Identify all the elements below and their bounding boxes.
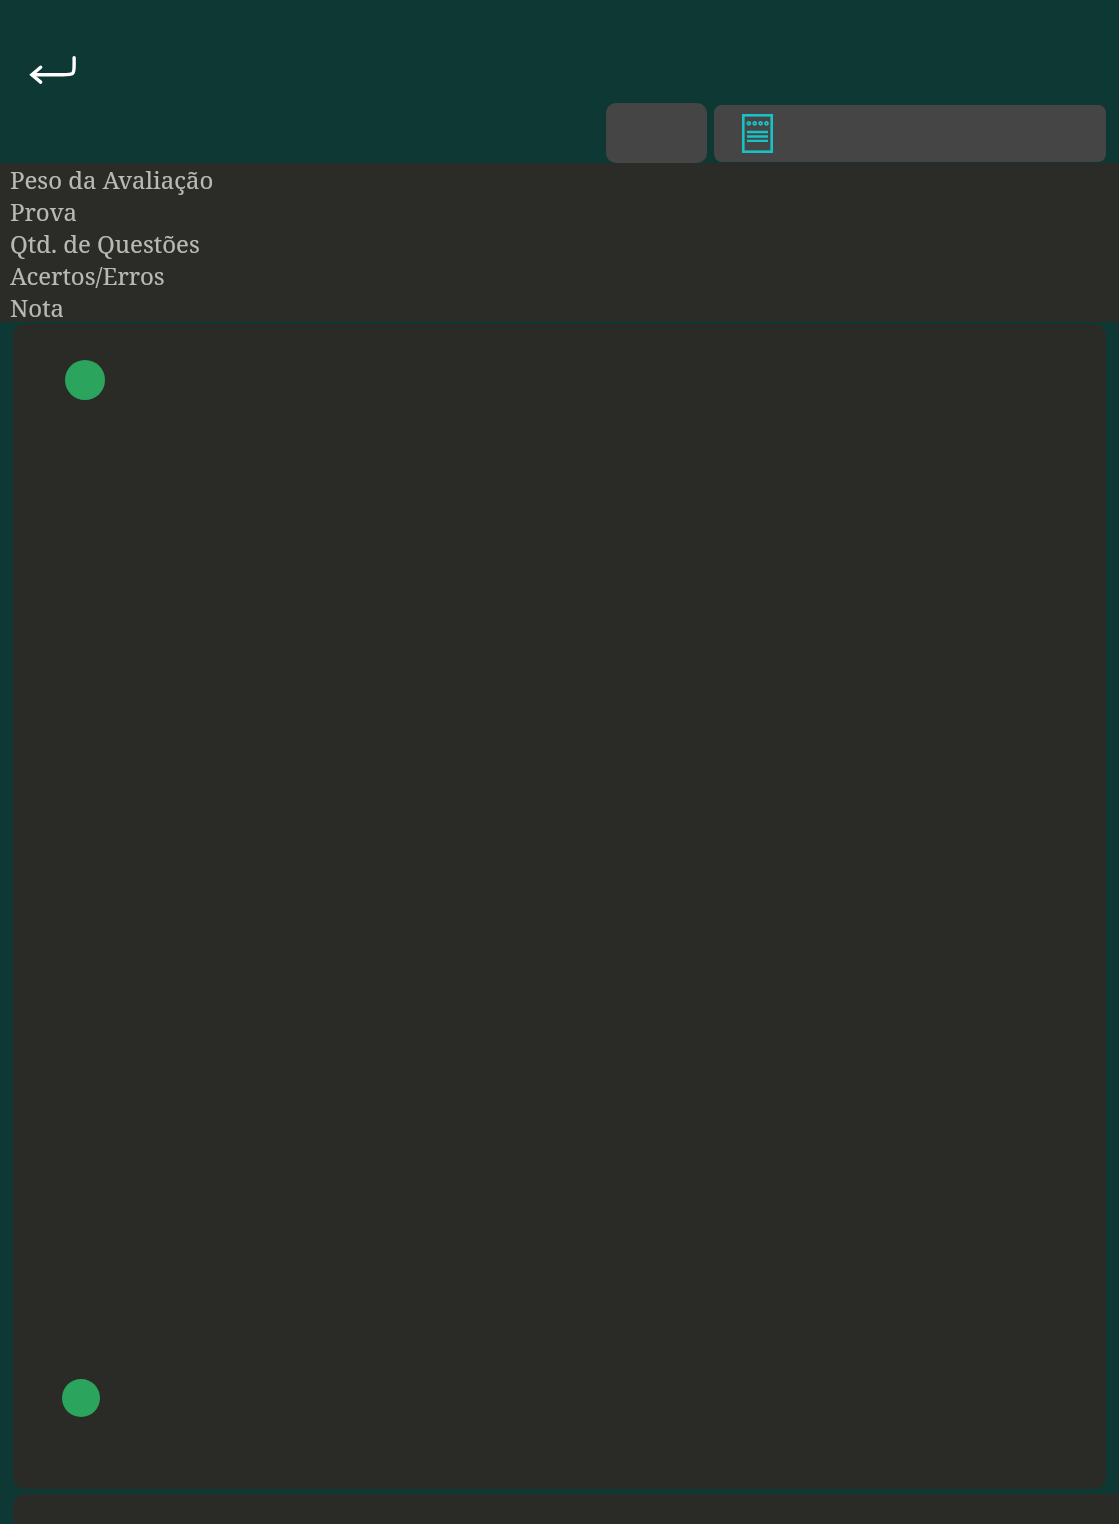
button[interactable]: Notas xyxy=(714,105,1106,162)
staticText: Peso da Avaliação xyxy=(10,163,214,195)
staticText: Prova xyxy=(10,195,78,227)
staticText: Acertos/Erros xyxy=(10,259,165,291)
button[interactable]: Opção xyxy=(606,103,707,163)
staticText: Nota xyxy=(10,291,65,322)
staticText: Qtd. de Questões xyxy=(10,227,200,259)
button[interactable] xyxy=(13,324,1106,1489)
button[interactable]: Voltar xyxy=(14,38,92,110)
